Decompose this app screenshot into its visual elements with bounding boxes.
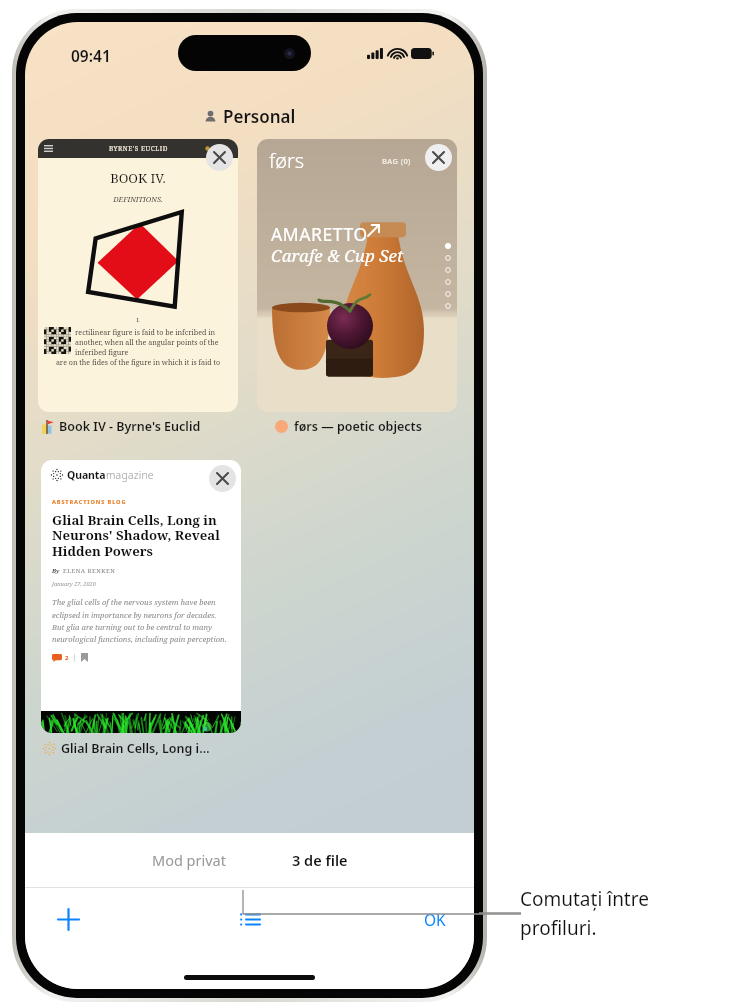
staticText: Personal <box>223 105 296 128</box>
staticText: BYRNE'S EUCLID <box>109 144 168 153</box>
staticText: profiluri. <box>520 915 597 941</box>
staticText: førs — poetic objects <box>294 418 422 435</box>
staticText: ABSTRACTIONS BLOG <box>52 498 127 506</box>
staticText: 3 de file <box>292 850 348 870</box>
staticText: Mod privat <box>152 850 226 870</box>
staticText: Glial Brain Cells, Long i… <box>61 740 210 757</box>
button[interactable]: Close tab <box>209 465 236 492</box>
staticText: 2 <box>65 654 69 662</box>
staticText: Comutați între <box>520 886 649 912</box>
staticText: The glial cells of the nervous system ha… <box>52 597 228 644</box>
staticText: 09:41 <box>71 45 111 66</box>
staticText: BOOK IV. <box>38 169 238 187</box>
staticText: are on the fides of the figure in which … <box>41 357 235 367</box>
staticText: førs <box>269 147 305 174</box>
staticText: Quanta <box>67 468 106 482</box>
button[interactable]: Switch profiles <box>228 897 272 941</box>
staticText: BAG (0) <box>382 156 411 166</box>
button[interactable]: Mod privat <box>140 844 238 876</box>
button[interactable]: førs <box>257 139 457 412</box>
button[interactable]: Quanta <box>41 460 241 733</box>
staticText: Glial Brain Cells, Long in Neurons' Shad… <box>52 511 227 560</box>
staticText: magazine <box>106 468 154 482</box>
button[interactable]: 3 de file <box>280 844 360 876</box>
staticText: ELENA RENKEN <box>63 567 116 575</box>
button[interactable]: New tab <box>47 898 89 940</box>
button[interactable]: Close tab <box>425 144 452 171</box>
staticText: By <box>52 567 60 575</box>
staticText: January 27, 2020 <box>52 580 96 588</box>
button[interactable]: BYRNE'S EUCLID <box>38 139 238 412</box>
staticText: I. <box>38 316 238 324</box>
staticText: Book IV - Byrne's Euclid <box>59 418 201 435</box>
staticText: Carafe & Cup Set <box>271 244 404 267</box>
staticText: DEFINITIONS. <box>38 194 238 204</box>
button[interactable]: OK <box>416 901 454 938</box>
button[interactable]: Close tab <box>206 144 233 171</box>
staticText: AMARETTO <box>271 222 368 246</box>
staticText: OK <box>424 909 446 930</box>
staticText: rectilinear figure is faid to be infcrib… <box>75 327 233 357</box>
